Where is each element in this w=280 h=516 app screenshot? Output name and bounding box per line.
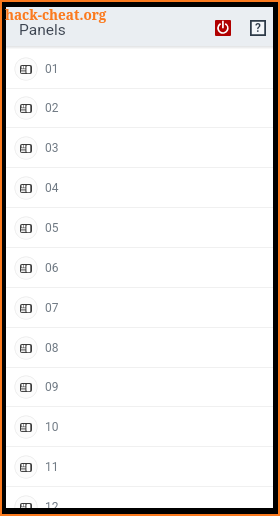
button[interactable]: 11 bbox=[6, 447, 273, 487]
button[interactable]: 06 bbox=[6, 248, 273, 288]
staticText: 09 bbox=[45, 380, 59, 394]
staticText: 10 bbox=[45, 420, 59, 434]
button[interactable]: 01 bbox=[6, 49, 273, 89]
button[interactable]: 03 bbox=[6, 128, 273, 168]
staticText: 04 bbox=[45, 181, 59, 195]
button[interactable]: 02 bbox=[6, 88, 273, 128]
staticText: 05 bbox=[45, 221, 59, 235]
button[interactable]: 09 bbox=[6, 367, 273, 407]
staticText: 06 bbox=[45, 261, 59, 275]
staticText: hack-cheat.org bbox=[5, 6, 107, 24]
staticText: 07 bbox=[45, 301, 59, 315]
staticText: 11 bbox=[45, 460, 59, 474]
staticText: 08 bbox=[45, 341, 59, 355]
staticText: 01 bbox=[45, 62, 59, 76]
button[interactable]: 07 bbox=[6, 288, 273, 328]
staticText: Panels bbox=[19, 21, 66, 39]
button[interactable]: 12 bbox=[6, 487, 273, 508]
button[interactable]: 10 bbox=[6, 407, 273, 447]
staticText: ? bbox=[255, 21, 261, 35]
button[interactable]: 04 bbox=[6, 168, 273, 208]
button[interactable]: Help bbox=[250, 20, 266, 36]
staticText: 03 bbox=[45, 141, 59, 155]
button[interactable]: 05 bbox=[6, 208, 273, 248]
button[interactable]: 08 bbox=[6, 328, 273, 368]
button[interactable]: Power bbox=[215, 20, 231, 36]
staticText: 02 bbox=[45, 101, 59, 115]
staticText: 12 bbox=[45, 500, 59, 508]
